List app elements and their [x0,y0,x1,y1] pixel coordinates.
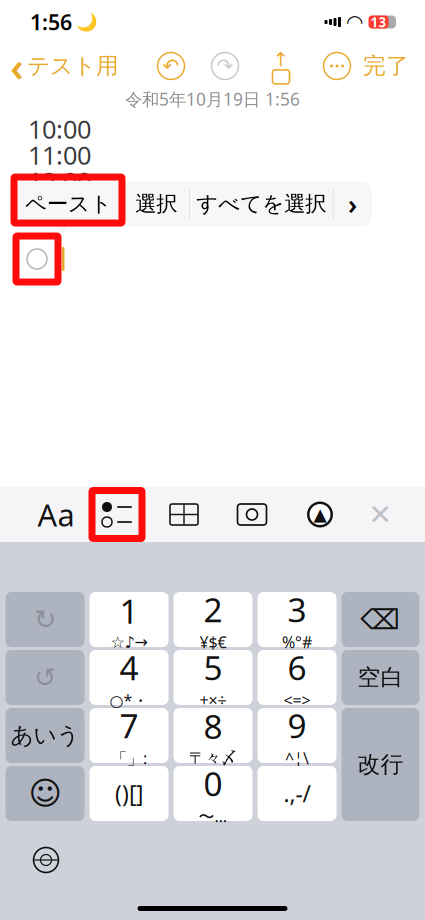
button[interactable]: Markup [294,488,346,540]
button[interactable]: Undo [5,650,84,705]
staticText: 12:00 [28,164,91,198]
staticText: ^¦\ [285,747,309,769]
staticText: ○*・ [109,689,148,711]
button[interactable]: Redo [5,592,84,647]
staticText: 10:00 [28,112,91,146]
staticText: ()[] [115,778,143,808]
staticText: 11:00 [28,138,91,172]
staticText: すべてを選択 [196,191,326,217]
staticText: ↶ [162,55,179,77]
staticText: 1 [119,589,138,633]
staticText: 7 [119,703,138,747]
staticText: あいう [10,722,79,749]
button[interactable]: .,-/ [257,766,336,821]
button[interactable]: 選択 [123,181,189,227]
button[interactable]: すべてを選択 [190,181,333,227]
staticText: 2 [203,587,222,631]
button[interactable]: Close [356,488,404,540]
staticText: ▼ [56,223,67,240]
staticText: ↑ [272,48,289,71]
button[interactable]: ‹ [0,44,119,88]
button[interactable]: 7 [89,708,168,763]
staticText: %°# [282,631,312,653]
button[interactable]: Space [341,650,419,705]
staticText: Aa [37,494,74,535]
staticText: 🌙 [76,12,98,32]
staticText: ↺ [34,662,56,693]
staticText: 完了 [363,52,409,80]
button[interactable]: Checklist [90,488,144,540]
staticText: ペースト [25,191,112,217]
button[interactable]: 9 [257,708,336,763]
staticText: ¥$€ [199,631,226,653]
button[interactable]: More [317,44,357,88]
staticText: 1:56 [30,8,72,36]
staticText: 〒々〆 [189,748,237,768]
staticText: <=> [283,689,310,711]
staticText: +×÷ [199,689,226,711]
staticText: › [348,186,357,222]
button[interactable]: Undo [151,44,191,88]
staticText: 4 [119,645,138,689]
staticText: 選択 [135,191,177,217]
staticText: 改行 [357,751,403,778]
button[interactable]: 8 [173,708,252,763]
button[interactable]: 5 [173,650,252,705]
staticText: 0 [203,761,222,805]
button[interactable]: 4 [89,650,168,705]
staticText: 〜… [198,805,227,827]
staticText: ✕ [368,499,391,530]
staticText: ↷ [216,55,233,77]
staticText: 空白 [357,664,403,691]
staticText: ↻ [34,604,56,635]
button[interactable]: Table [158,488,210,540]
staticText: ⌫ [360,604,400,635]
staticText: 6 [287,645,306,689]
button[interactable]: Change keyboard [18,839,74,881]
staticText: .,-/ [283,778,310,808]
button[interactable]: ()[] [89,766,168,821]
staticText: ▲ [313,505,326,524]
button[interactable]: Kana [5,708,84,763]
button[interactable]: 1 [89,592,168,647]
button[interactable]: Delete [341,592,419,647]
staticText: ☆♪→ [110,633,147,651]
button[interactable]: Redo [205,44,245,88]
button[interactable]: 0 [173,766,252,821]
staticText: ☺ [28,775,61,812]
button[interactable]: Emoji [5,766,84,821]
button[interactable]: 2 [173,592,252,647]
staticText: テスト用 [27,52,119,80]
button[interactable]: Share [261,44,301,88]
button[interactable]: Text format [30,488,82,540]
button[interactable]: 完了 [363,44,425,88]
staticText: 5 [203,645,222,689]
staticText: ◠ [347,11,362,33]
staticText: ‹ [10,39,24,92]
staticText: 13 [370,13,386,31]
staticText: 8 [203,704,222,748]
button[interactable]: ペースト [14,181,122,227]
button[interactable]: More actions [333,181,371,227]
staticText: 9 [287,703,306,747]
staticText: 3 [287,587,306,631]
button[interactable]: Return [341,708,419,821]
staticText: 「」: [111,747,147,769]
button[interactable]: 3 [257,592,336,647]
button[interactable]: Camera [226,488,278,540]
button[interactable]: 6 [257,650,336,705]
staticText: 令和5年10月19日 1:56 [125,87,300,110]
